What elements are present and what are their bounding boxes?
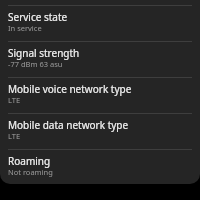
- staticText: In service: [8, 23, 42, 33]
- staticText: LTE: [8, 95, 21, 105]
- staticText: Mobile voice network type: [8, 82, 132, 96]
- button[interactable]: Roaming: [0, 149, 200, 184]
- staticText: LTE: [8, 131, 21, 141]
- button[interactable]: Service state: [0, 5, 200, 41]
- staticText: Service state: [8, 10, 68, 24]
- button[interactable]: Mobile data network type: [0, 113, 200, 149]
- staticText: -77 dBm 63 asu: [8, 59, 63, 69]
- staticText: Roaming: [8, 154, 51, 168]
- staticText: Signal strength: [8, 46, 80, 60]
- button[interactable]: Signal strength: [0, 41, 200, 77]
- button[interactable]: Mobile voice network type: [0, 77, 200, 113]
- staticText: Mobile data network type: [8, 118, 129, 132]
- staticText: Not roaming: [8, 167, 53, 177]
